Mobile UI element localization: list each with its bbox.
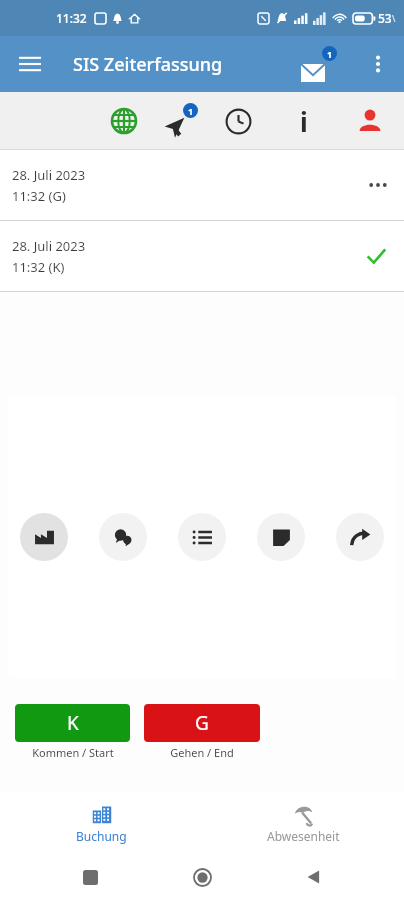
button[interactable]: Home (180, 855, 224, 899)
button[interactable]: Messages (99, 513, 147, 561)
button[interactable]: 28. Juli 2023 (0, 221, 404, 291)
button[interactable]: Info (284, 95, 324, 147)
button[interactable]: Confirmed (356, 236, 396, 276)
button[interactable]: Company (20, 513, 68, 561)
staticText: \ (392, 12, 396, 24)
staticText: 11:32 (G) (12, 187, 66, 205)
staticText: 53 (378, 10, 392, 26)
button[interactable]: Menu (8, 42, 52, 86)
staticText: Abwesenheit (267, 828, 340, 844)
button[interactable]: K (15, 704, 130, 742)
button[interactable]: Web (104, 95, 144, 147)
staticText: Kommen / Start (32, 745, 114, 760)
staticText: G (195, 710, 209, 736)
button[interactable]: Bookings (160, 95, 200, 147)
button[interactable]: Notes (257, 513, 305, 561)
staticText: 11:32 (56, 10, 87, 26)
staticText: 28. Juli 2023 (12, 237, 86, 255)
button[interactable]: Time (218, 95, 258, 147)
staticText: i (300, 104, 308, 139)
button[interactable]: 28. Juli 2023 (0, 150, 404, 220)
button[interactable]: List (178, 513, 226, 561)
button[interactable]: Profile (350, 95, 390, 147)
button[interactable]: More options (356, 42, 400, 86)
staticText: 28. Juli 2023 (12, 166, 86, 184)
button[interactable]: G (144, 704, 260, 742)
button[interactable]: Abwesenheit (202, 792, 404, 854)
button[interactable]: Forward (336, 513, 384, 561)
staticText: 1 (188, 105, 194, 117)
button[interactable]: Messages (296, 41, 342, 87)
button[interactable]: Back (292, 855, 336, 899)
button[interactable]: Buchung (0, 792, 202, 854)
staticText: Gehen / End (170, 745, 234, 760)
staticText: 1 (327, 48, 333, 60)
staticText: SIS Zeiterfassung (73, 52, 223, 77)
staticText: K (67, 710, 79, 736)
button[interactable]: Recents (68, 855, 112, 899)
button[interactable]: Row options (358, 165, 398, 205)
staticText: 11:32 (K) (12, 258, 65, 276)
staticText: Buchung (76, 828, 127, 844)
